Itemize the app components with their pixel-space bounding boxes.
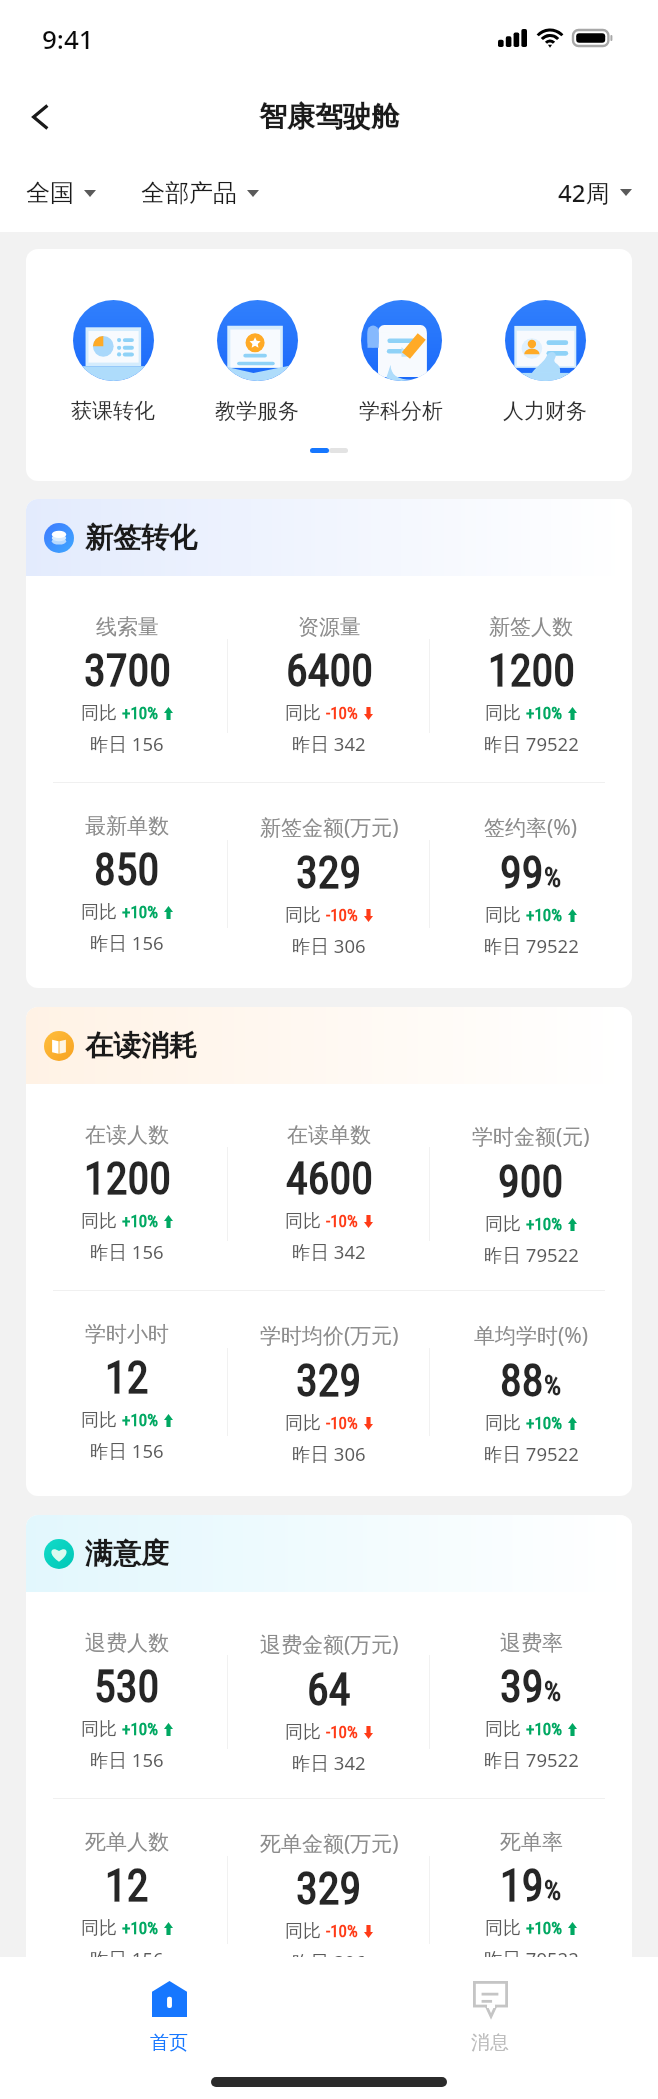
staticText: 530 xyxy=(94,1661,160,1713)
staticText: 死单人数 xyxy=(85,1829,169,1855)
staticText: +10% xyxy=(122,1719,158,1739)
staticText: -10% xyxy=(326,905,358,925)
staticText: +10% xyxy=(122,1410,158,1430)
staticText: +10% xyxy=(526,1719,562,1739)
staticText: 329 xyxy=(296,1355,362,1407)
staticText: 同比 xyxy=(485,1213,521,1236)
staticText: 同比 xyxy=(285,904,321,927)
staticText: 新签人数 xyxy=(489,614,573,640)
staticText: 6400 xyxy=(286,645,373,697)
staticText: % xyxy=(544,1370,562,1402)
button[interactable]: 消息 xyxy=(329,1957,650,2057)
staticText: 在读消耗 xyxy=(85,1028,197,1063)
staticText: 329 xyxy=(296,847,362,899)
staticText: +10% xyxy=(526,1918,562,1938)
staticText: 昨日 156 xyxy=(90,1747,164,1772)
staticText: 同比 xyxy=(81,702,117,725)
staticText: 同比 xyxy=(485,702,521,725)
staticText: +10% xyxy=(122,1211,158,1231)
staticText: -10% xyxy=(326,1722,358,1742)
staticText: 同比 xyxy=(485,1412,521,1435)
staticText: 签约率(%) xyxy=(484,813,578,842)
staticText: +10% xyxy=(526,905,562,925)
staticText: +10% xyxy=(122,1918,158,1938)
staticText: 学时小时 xyxy=(85,1321,169,1347)
staticText: 12 xyxy=(105,1352,149,1404)
button[interactable]: 全国 xyxy=(26,170,96,216)
staticText: 昨日 342 xyxy=(292,1750,366,1775)
staticText: 昨日 156 xyxy=(90,1946,164,1971)
staticText: 昨日 156 xyxy=(90,1239,164,1264)
staticText: 资源量 xyxy=(298,614,361,640)
staticText: 同比 xyxy=(485,904,521,927)
staticText: 昨日 306 xyxy=(292,933,366,958)
staticText: 昨日 306 xyxy=(292,1441,366,1466)
staticText: 同比 xyxy=(285,1721,321,1744)
staticText: +10% xyxy=(526,703,562,723)
staticText: 同比 xyxy=(81,901,117,924)
staticText: 昨日 79522 xyxy=(484,731,579,756)
staticText: 同比 xyxy=(81,1917,117,1940)
staticText: +10% xyxy=(122,902,158,922)
staticText: 新签转化 xyxy=(85,520,197,555)
staticText: 学时均价(万元) xyxy=(260,1321,399,1350)
staticText: 昨日 79522 xyxy=(484,1747,579,1772)
button[interactable]: 教学服务 xyxy=(185,300,329,424)
staticText: 最新单数 xyxy=(85,813,169,839)
staticText: 同比 xyxy=(81,1210,117,1233)
button[interactable]: 人力财务 xyxy=(473,300,617,424)
button[interactable]: 学科分析 xyxy=(329,300,473,424)
staticText: 死单率 xyxy=(500,1829,563,1855)
staticText: +10% xyxy=(526,1413,562,1433)
staticText: 学时金额(元) xyxy=(472,1122,590,1151)
staticText: 850 xyxy=(94,844,160,896)
staticText: 9:41 xyxy=(42,21,94,56)
staticText: 同比 xyxy=(485,1917,521,1940)
staticText: 昨日 342 xyxy=(292,731,366,756)
staticText: 1200 xyxy=(84,1153,171,1205)
staticText: 消息 xyxy=(471,2031,509,2055)
staticText: 教学服务 xyxy=(215,398,299,424)
staticText: 退费金额(万元) xyxy=(260,1630,399,1659)
staticText: 42周 xyxy=(558,176,610,209)
staticText: 人力财务 xyxy=(503,398,587,424)
staticText: 39 xyxy=(500,1661,544,1713)
staticText: 昨日 79522 xyxy=(484,1242,579,1267)
staticText: 线索量 xyxy=(96,614,159,640)
staticText: 同比 xyxy=(81,1718,117,1741)
staticText: 获课转化 xyxy=(71,398,155,424)
staticText: 在读人数 xyxy=(85,1122,169,1148)
staticText: 在读单数 xyxy=(287,1122,371,1148)
staticText: 单均学时(%) xyxy=(474,1321,589,1350)
staticText: 3700 xyxy=(84,645,171,697)
staticText: 同比 xyxy=(285,1920,321,1943)
staticText: 900 xyxy=(498,1156,564,1208)
staticText: 同比 xyxy=(285,1412,321,1435)
staticText: 智康驾驶舱 xyxy=(259,99,399,134)
button[interactable]: 全部产品 xyxy=(141,170,259,216)
button[interactable]: 首页 xyxy=(8,1957,329,2057)
staticText: 昨日 156 xyxy=(90,731,164,756)
staticText: 同比 xyxy=(485,1718,521,1741)
staticText: 首页 xyxy=(150,2031,188,2055)
button[interactable]: 获课转化 xyxy=(41,300,185,424)
staticText: 退费率 xyxy=(500,1630,563,1656)
staticText: 88 xyxy=(500,1355,544,1407)
staticText: +10% xyxy=(122,703,158,723)
staticText: 12 xyxy=(105,1860,149,1912)
staticText: 64 xyxy=(307,1664,351,1716)
staticText: 昨日 79522 xyxy=(484,1441,579,1466)
staticText: % xyxy=(544,1875,562,1907)
staticText: 19 xyxy=(500,1860,544,1912)
staticText: % xyxy=(544,1676,562,1708)
button[interactable]: Back xyxy=(0,80,80,153)
staticText: 退费人数 xyxy=(85,1630,169,1656)
staticText: 满意度 xyxy=(85,1536,169,1571)
staticText: -10% xyxy=(326,1921,358,1941)
button[interactable]: 42周 xyxy=(558,168,632,217)
staticText: % xyxy=(544,862,562,894)
staticText: 1200 xyxy=(488,645,575,697)
staticText: +10% xyxy=(526,1214,562,1234)
staticText: 昨日 156 xyxy=(90,930,164,955)
staticText: 99 xyxy=(500,847,544,899)
